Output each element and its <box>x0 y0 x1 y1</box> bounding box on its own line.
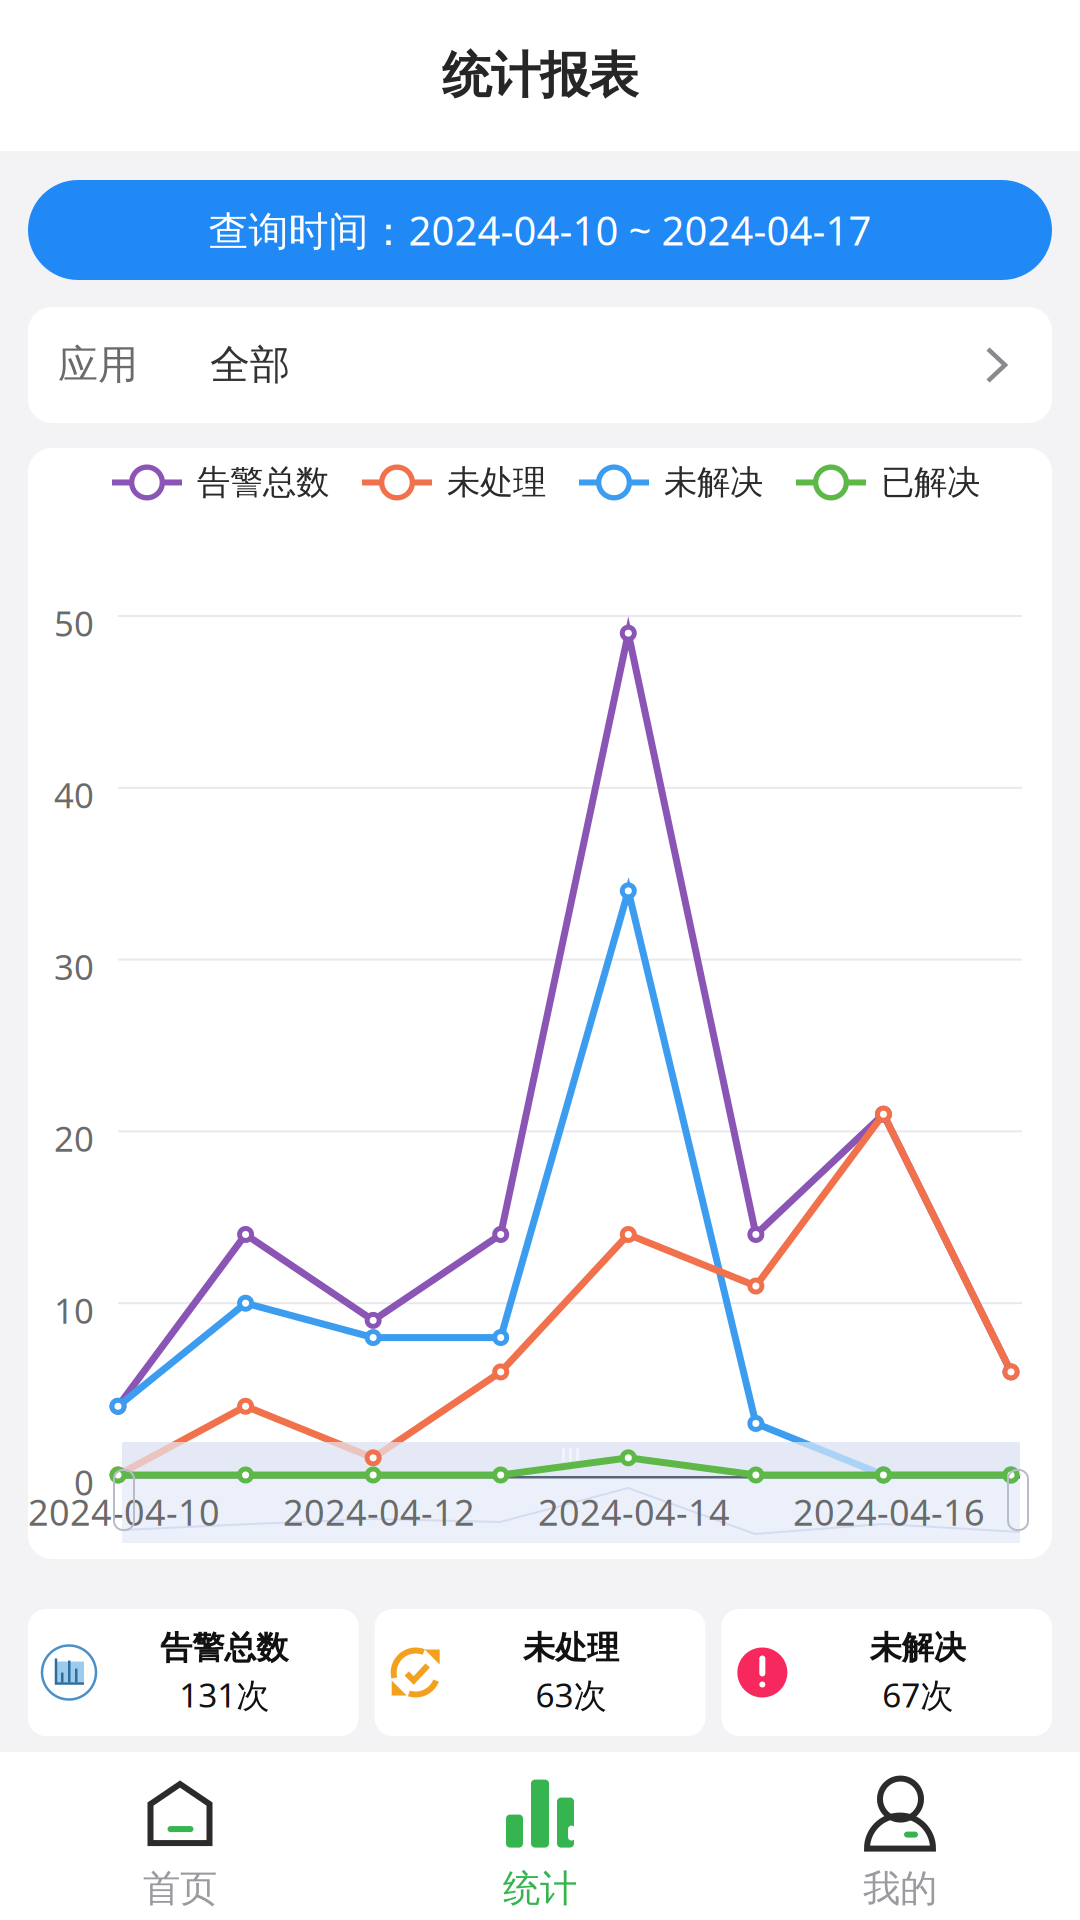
staticText: 未解决 <box>870 1628 966 1667</box>
staticText: 未处理 <box>523 1628 619 1667</box>
staticText: 131次 <box>179 1672 269 1717</box>
staticText: 统计报表 <box>442 45 638 106</box>
button[interactable]: 统计 <box>360 1751 720 1920</box>
staticText: 全部 <box>210 340 290 389</box>
button[interactable]: 我的 <box>720 1751 1080 1920</box>
staticText: 63次 <box>535 1672 606 1717</box>
staticText: 2024-04-12 <box>283 1488 475 1536</box>
button[interactable]: 首页 <box>0 1751 360 1920</box>
staticText: 2024-04-10 <box>28 1488 220 1536</box>
staticText: 查询时间：2024-04-10 ~ 2024-04-17 <box>208 203 871 256</box>
button[interactable]: 未解决 <box>721 1609 1052 1736</box>
staticText: 20 <box>54 1115 94 1161</box>
staticText: 首页 <box>143 1866 217 1911</box>
button[interactable]: 应用 <box>28 307 1052 423</box>
staticText: 2024-04-16 <box>793 1488 985 1536</box>
staticText: 未解决 <box>664 462 763 503</box>
staticText: 50 <box>54 600 94 646</box>
staticText: 告警总数 <box>197 462 329 503</box>
staticText: 未处理 <box>447 462 546 503</box>
staticText: 我的 <box>863 1866 937 1911</box>
button[interactable]: 告警总数 <box>28 1609 359 1736</box>
staticText: 67次 <box>882 1672 953 1717</box>
button[interactable]: 查询时间：2024-04-10 ~ 2024-04-17 <box>28 180 1052 280</box>
staticText: 40 <box>54 772 94 818</box>
staticText: 2024-04-14 <box>538 1488 730 1536</box>
staticText: 统计 <box>503 1866 577 1911</box>
staticText: 告警总数 <box>160 1628 288 1667</box>
staticText: 0 <box>74 1459 94 1505</box>
staticText: 10 <box>54 1287 94 1333</box>
staticText: 已解决 <box>881 462 980 503</box>
button[interactable]: 未处理 <box>375 1609 705 1736</box>
staticText: 30 <box>54 944 94 990</box>
staticText: 应用 <box>58 340 138 389</box>
